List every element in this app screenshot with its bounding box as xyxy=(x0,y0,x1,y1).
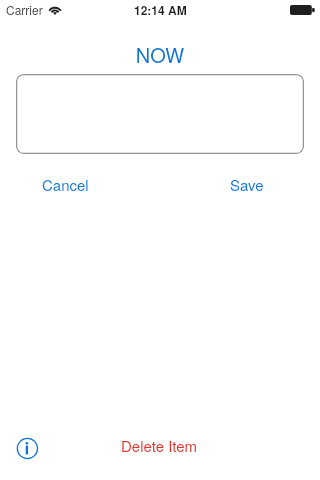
staticText: Delete Item xyxy=(121,435,198,456)
staticText: Save xyxy=(230,174,264,195)
button[interactable]: Cancel xyxy=(36,170,95,199)
button[interactable]: Delete Item xyxy=(115,431,204,460)
button[interactable]: Save xyxy=(224,170,270,199)
button[interactable] xyxy=(16,74,304,154)
staticText: NOW xyxy=(0,40,320,69)
staticText: 12:14 AM xyxy=(134,1,187,18)
button[interactable]: Info xyxy=(11,432,44,465)
staticText: Carrier xyxy=(6,1,43,18)
staticText: Cancel xyxy=(42,174,89,195)
